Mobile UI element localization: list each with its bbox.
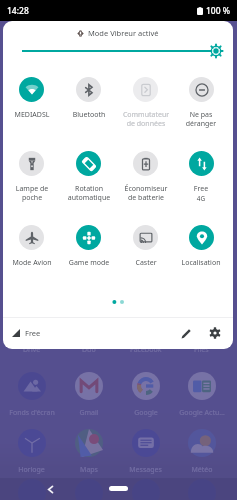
button[interactable]: Caster [117, 225, 174, 299]
staticText: Horloge [18, 465, 45, 475]
button[interactable]: Commutateur de données [117, 77, 174, 151]
staticText: Mode Avion [8, 258, 56, 268]
staticText: Free [25, 328, 41, 338]
button[interactable]: Lampe de poche [3, 151, 60, 225]
staticText: Drive [23, 345, 41, 355]
button[interactable]: Maps [60, 429, 117, 486]
staticText: Gmail [79, 408, 99, 418]
button[interactable]: Modifier [176, 323, 196, 343]
staticText: Facebook [130, 345, 162, 355]
staticText: Duo [82, 345, 96, 355]
staticText: Maps [80, 465, 98, 475]
button[interactable] [22, 43, 217, 59]
staticText: Localisation [177, 258, 225, 268]
staticText: Ne pas déranger [177, 110, 225, 128]
staticText: Files [194, 345, 209, 355]
staticText: Économiseur de batterie [122, 184, 170, 202]
staticText: Rotation automatique [65, 184, 113, 202]
staticText: Lampe de poche [8, 184, 56, 202]
button[interactable]: Paramètres [205, 323, 225, 343]
staticText: Game mode [65, 258, 113, 268]
staticText: Mode Vibreur activé [88, 28, 159, 38]
button[interactable]: Fonds d'écran [3, 372, 60, 429]
button[interactable]: Mode Avion [3, 225, 60, 299]
staticText: Messages [129, 465, 162, 475]
staticText: Caster [122, 258, 170, 268]
button[interactable]: MEDIADSL [3, 77, 60, 151]
button[interactable]: Mode Vibreur activé [3, 28, 233, 38]
staticText: 14:28 [7, 5, 29, 17]
button[interactable]: Free [12, 328, 41, 338]
button[interactable]: Retour [40, 479, 60, 499]
staticText: Fonds d'écran [9, 408, 55, 418]
button[interactable]: Localisation [174, 225, 228, 299]
button[interactable]: Free [174, 151, 228, 225]
staticText: Météo [191, 465, 213, 475]
button[interactable]: Ne pas déranger [174, 77, 228, 151]
staticText: Commutateur de données [122, 110, 170, 128]
button[interactable]: Économiseur de batterie [117, 151, 174, 225]
button[interactable]: Gmail [60, 372, 117, 429]
button[interactable]: Horloge [3, 429, 60, 486]
button[interactable]: Google [117, 372, 174, 429]
staticText: Bluetooth [65, 110, 113, 120]
button[interactable]: Messages [117, 429, 174, 486]
button[interactable]: Bluetooth [60, 77, 117, 151]
staticText: Free [177, 184, 225, 194]
button[interactable]: Rotation automatique [60, 151, 117, 225]
staticText: 4G [177, 194, 225, 203]
staticText: Google [134, 408, 158, 418]
button[interactable]: Game mode [60, 225, 117, 299]
staticText: Google Actu… [179, 408, 225, 418]
button[interactable]: Accueil [109, 486, 128, 491]
staticText: 100 % [206, 5, 231, 17]
button[interactable]: Google Actu… [174, 372, 229, 429]
staticText: MEDIADSL [8, 110, 56, 120]
button[interactable]: Météo [174, 429, 229, 486]
